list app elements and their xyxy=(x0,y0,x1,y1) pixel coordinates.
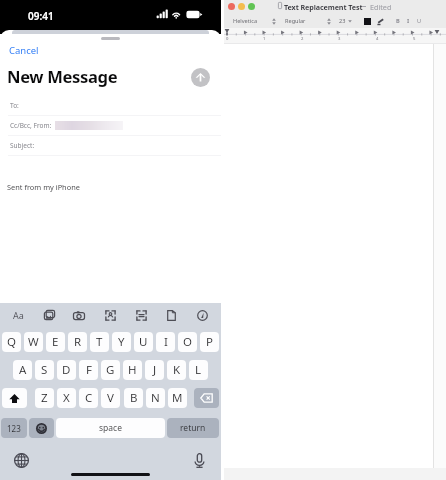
button[interactable]: B xyxy=(124,388,143,408)
button[interactable]: E xyxy=(46,332,65,352)
button[interactable]: Backspace xyxy=(194,388,219,408)
staticText: B xyxy=(396,17,400,25)
staticText: J xyxy=(153,362,157,378)
staticText: U xyxy=(417,17,422,25)
button[interactable]: Highlight xyxy=(376,17,384,25)
button[interactable]: space xyxy=(56,418,165,438)
staticText: D xyxy=(62,362,71,378)
button[interactable]: S xyxy=(35,360,54,380)
staticText: 0 xyxy=(226,36,229,42)
staticText: P xyxy=(206,334,213,350)
staticText: 3 xyxy=(338,36,341,42)
staticText: A xyxy=(19,362,27,378)
staticText: Helvetica xyxy=(233,17,258,25)
staticText: U xyxy=(139,334,148,350)
staticText: 2 xyxy=(301,36,304,42)
staticText: F xyxy=(86,362,92,378)
staticText: M xyxy=(172,390,183,406)
staticText: C xyxy=(85,390,93,406)
button[interactable]: Minimize xyxy=(238,3,245,10)
staticText: K xyxy=(173,362,181,378)
button[interactable]: Y xyxy=(112,332,131,352)
staticText: Edited xyxy=(370,2,392,12)
staticText: I xyxy=(407,17,410,25)
button[interactable]: Attach file xyxy=(162,306,180,324)
staticText: R xyxy=(74,334,82,350)
button[interactable]: Dictate xyxy=(189,450,209,470)
button[interactable]: return xyxy=(167,418,219,438)
button[interactable]: D xyxy=(57,360,76,380)
button[interactable]: Shift xyxy=(2,388,27,408)
button[interactable]: Q xyxy=(2,332,21,352)
staticText: Aa xyxy=(13,309,24,321)
button[interactable]: X xyxy=(57,388,76,408)
button[interactable]: P xyxy=(200,332,219,352)
staticText: X xyxy=(63,390,70,406)
button[interactable]: Subject: xyxy=(10,136,221,155)
button[interactable]: R xyxy=(68,332,87,352)
button[interactable]: N xyxy=(146,388,165,408)
button[interactable]: Cc/Bcc, From: xyxy=(10,116,221,135)
staticText: Cc/Bcc, From: xyxy=(10,121,52,130)
button[interactable]: Scan text xyxy=(132,306,150,324)
button[interactable]: Z xyxy=(35,388,54,408)
button[interactable]: J xyxy=(145,360,164,380)
staticText: 09:41 xyxy=(28,9,54,23)
button[interactable]: O xyxy=(178,332,197,352)
button[interactable]: U xyxy=(134,332,153,352)
staticText: N xyxy=(151,390,160,406)
button[interactable]: W xyxy=(24,332,43,352)
staticText: Z xyxy=(41,390,48,406)
button[interactable]: Zoom xyxy=(248,3,255,10)
staticText: 23 xyxy=(339,17,346,25)
staticText: To: xyxy=(10,101,19,110)
button[interactable]: H xyxy=(123,360,142,380)
button[interactable]: T xyxy=(90,332,109,352)
button[interactable]: L xyxy=(189,360,208,380)
staticText: W xyxy=(28,334,39,350)
staticText: Text Replacement Test xyxy=(284,2,363,12)
staticText: 123 xyxy=(7,423,21,434)
staticText: Cancel xyxy=(9,44,39,57)
staticText: L xyxy=(195,362,202,378)
staticText: Subject: xyxy=(10,141,35,150)
staticText: Q xyxy=(7,334,16,350)
button[interactable]: 123 xyxy=(1,418,27,438)
button[interactable]: Text formatting xyxy=(9,306,27,324)
staticText: O xyxy=(183,334,192,350)
button[interactable]: Markup xyxy=(193,306,211,324)
button[interactable]: Scan document xyxy=(101,306,119,324)
button[interactable]: C xyxy=(79,388,98,408)
button[interactable]: V xyxy=(101,388,120,408)
staticText: space xyxy=(99,422,122,434)
button[interactable]: M xyxy=(168,388,187,408)
button[interactable]: G xyxy=(101,360,120,380)
button[interactable]: I xyxy=(156,332,175,352)
button[interactable]: Photo library xyxy=(40,306,58,324)
staticText: 5 xyxy=(413,36,416,42)
staticText: G xyxy=(106,362,115,378)
staticText: Sent from my iPhone xyxy=(7,182,80,192)
staticText: New Message xyxy=(7,65,118,88)
button[interactable]: Change keyboard xyxy=(11,450,31,470)
staticText: V xyxy=(107,390,114,406)
button[interactable]: Cancel xyxy=(9,44,39,57)
button[interactable]: Emoji xyxy=(29,418,54,438)
button[interactable]: K xyxy=(167,360,186,380)
button[interactable]: Close xyxy=(228,3,235,10)
staticText: Y xyxy=(118,334,125,350)
staticText: H xyxy=(128,362,137,378)
button[interactable]: F xyxy=(79,360,98,380)
button[interactable]: Send xyxy=(191,68,210,87)
staticText: 1 xyxy=(263,36,266,42)
staticText: 4 xyxy=(376,36,379,42)
staticText: Regular xyxy=(285,17,306,25)
staticText: S xyxy=(41,362,48,378)
staticText: I xyxy=(164,334,168,350)
button[interactable]: To: xyxy=(10,96,221,115)
button[interactable]: Camera xyxy=(70,306,88,324)
staticText: T xyxy=(96,334,103,350)
button[interactable]: A xyxy=(13,360,32,380)
staticText: return xyxy=(180,422,206,434)
